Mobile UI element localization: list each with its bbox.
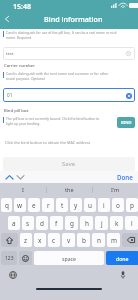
staticText: h [85, 219, 89, 228]
button[interactable]: test [3, 47, 135, 60]
staticText: test [6, 51, 14, 57]
button[interactable]: c [48, 233, 60, 247]
staticText: Click the bind button to obtain the MAC … [5, 140, 91, 145]
staticText: I [22, 186, 24, 194]
button[interactable]: space [34, 251, 104, 265]
staticText: z [24, 236, 28, 245]
button[interactable]: Back [0, 12, 14, 26]
staticText: the [65, 186, 74, 194]
button[interactable]: Done [112, 171, 138, 183]
staticText: l [131, 219, 133, 228]
button[interactable]: q [1, 198, 12, 212]
button[interactable]: the [47, 183, 92, 196]
button[interactable]: Change keyboard [8, 270, 18, 280]
button[interactable]: BIND [117, 117, 135, 128]
staticText: Done [117, 173, 133, 181]
staticText: 15:48 [13, 2, 31, 12]
button[interactable]: l [125, 216, 138, 230]
button[interactable]: i [98, 198, 110, 212]
button[interactable]: x [34, 233, 46, 247]
staticText: o [116, 201, 120, 210]
staticText: social purpose. Optional [6, 76, 45, 81]
staticText: p [130, 201, 134, 210]
button[interactable]: Clear text [125, 50, 132, 57]
staticText: Carrier number [4, 63, 35, 69]
button[interactable]: o [112, 198, 124, 212]
staticText: v [67, 236, 71, 245]
button[interactable]: g [65, 216, 78, 230]
button[interactable]: e [28, 198, 40, 212]
staticText: u [88, 201, 92, 210]
button[interactable]: z [20, 233, 32, 247]
button[interactable]: Dictation [118, 270, 128, 280]
staticText: j [101, 219, 103, 228]
staticText: g [70, 219, 74, 228]
button[interactable]: Shift [1, 233, 18, 247]
button[interactable]: w [14, 198, 26, 212]
staticText: e [32, 201, 36, 210]
staticText: x [38, 236, 42, 245]
staticText: b [82, 236, 86, 245]
staticText: q [5, 201, 9, 210]
staticText: i [103, 201, 105, 210]
staticText: done [116, 255, 129, 262]
button[interactable]: Clear text [125, 92, 132, 99]
button[interactable]: v [62, 233, 75, 247]
staticText: a [12, 219, 16, 228]
button[interactable]: Backspace [122, 233, 138, 247]
button[interactable]: 01 [3, 88, 135, 102]
staticText: space [62, 255, 77, 262]
button[interactable]: m [107, 233, 120, 247]
staticText: Bind pill box [4, 108, 29, 114]
staticText: light up your binding. [6, 121, 41, 126]
button[interactable]: done [106, 251, 138, 265]
button[interactable]: p [126, 198, 138, 212]
button[interactable]: u [84, 198, 96, 212]
button[interactable]: Next field [14, 171, 26, 183]
staticText: Card is distinguish for use of the pill … [6, 30, 117, 35]
staticText: c [52, 236, 56, 245]
button[interactable]: Emoji [19, 251, 32, 265]
button[interactable]: I'm [93, 183, 138, 196]
staticText: s [26, 219, 30, 228]
staticText: 01 [7, 92, 13, 98]
staticText: Save [62, 160, 76, 168]
button[interactable]: d [36, 216, 48, 230]
staticText: f [55, 219, 58, 228]
staticText: I'm [111, 186, 120, 194]
staticText: 123 [5, 255, 14, 262]
button[interactable]: Previous field [3, 171, 15, 183]
staticText: w [17, 201, 23, 210]
staticText: BIND [121, 120, 132, 126]
staticText: m [111, 236, 117, 245]
button[interactable]: s [22, 216, 34, 230]
button[interactable]: h [80, 216, 93, 230]
button[interactable]: f [50, 216, 63, 230]
button[interactable]: j [95, 216, 108, 230]
staticText: Card is distinguish with the next name a… [6, 71, 109, 76]
button[interactable]: a [8, 216, 20, 230]
button[interactable]: r [42, 198, 54, 212]
button[interactable]: 123 [1, 251, 17, 265]
button[interactable]: t [56, 198, 68, 212]
staticText: k [115, 219, 119, 228]
button[interactable]: y [70, 198, 82, 212]
staticText: r [47, 201, 50, 210]
button[interactable]: Save [3, 157, 135, 171]
staticText: n [97, 236, 101, 245]
staticText: t [61, 201, 64, 210]
button[interactable]: k [110, 216, 123, 230]
staticText: name. Required [6, 35, 32, 40]
button[interactable]: I [0, 183, 46, 196]
staticText: Bind information [44, 14, 103, 24]
staticText: The pill box is not currently bound. Cli… [6, 116, 100, 121]
button[interactable]: n [92, 233, 105, 247]
button[interactable]: b [77, 233, 90, 247]
staticText: d [40, 219, 44, 228]
staticText: y [74, 201, 78, 210]
